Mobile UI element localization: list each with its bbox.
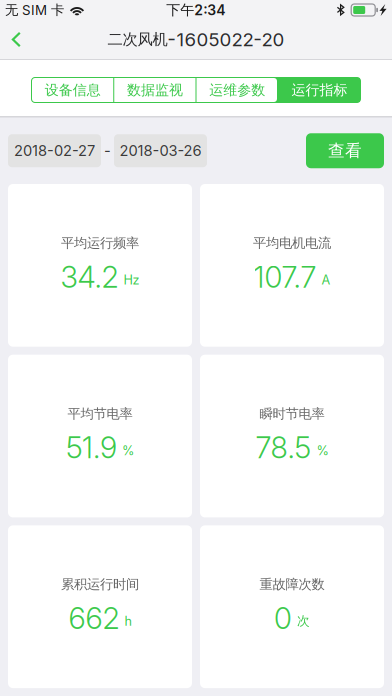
button[interactable]: 运维参数: [196, 78, 278, 102]
staticText: %: [316, 443, 328, 458]
staticText: 107.7: [253, 259, 316, 295]
staticText: 重故障次数: [259, 576, 324, 593]
staticText: 平均电机电流: [253, 235, 331, 251]
staticText: 设备信息: [45, 81, 101, 99]
staticText: 0: [274, 601, 292, 636]
staticText: 无 SIM 卡: [5, 2, 64, 18]
staticText: 下午2:34: [166, 1, 225, 19]
button[interactable]: 运行指标: [279, 78, 360, 102]
staticText: 查看: [328, 140, 362, 161]
staticText: 34.2: [60, 259, 118, 295]
button[interactable]: 2018-02-27: [8, 134, 101, 167]
staticText: 2018-03-26: [119, 142, 201, 160]
staticText: 2018-02-27: [14, 142, 95, 160]
button[interactable]: 数据监视: [114, 78, 195, 102]
staticText: 78.5: [255, 430, 311, 465]
staticText: 运维参数: [209, 81, 265, 99]
staticText: 累积运行时间: [61, 576, 139, 593]
staticText: h: [124, 614, 131, 629]
staticText: 二次风机: [107, 30, 167, 49]
staticText: 51.9: [66, 430, 117, 465]
staticText: A: [321, 272, 330, 287]
staticText: 瞬时节电率: [259, 405, 324, 422]
staticText: 次: [297, 613, 310, 629]
button[interactable]: 查看: [306, 133, 384, 168]
button[interactable]: Back: [0, 20, 32, 59]
staticText: 平均运行频率: [61, 235, 139, 251]
button[interactable]: 2018-03-26: [114, 134, 207, 167]
staticText: -1605022-20: [167, 28, 284, 51]
staticText: %: [122, 443, 134, 458]
staticText: 平均节电率: [67, 405, 132, 422]
staticText: 运行指标: [291, 81, 347, 99]
staticText: 数据监视: [127, 81, 183, 99]
staticText: -: [104, 142, 111, 160]
staticText: 662: [68, 601, 119, 636]
button[interactable]: 设备信息: [32, 78, 113, 102]
staticText: Hz: [123, 272, 139, 287]
